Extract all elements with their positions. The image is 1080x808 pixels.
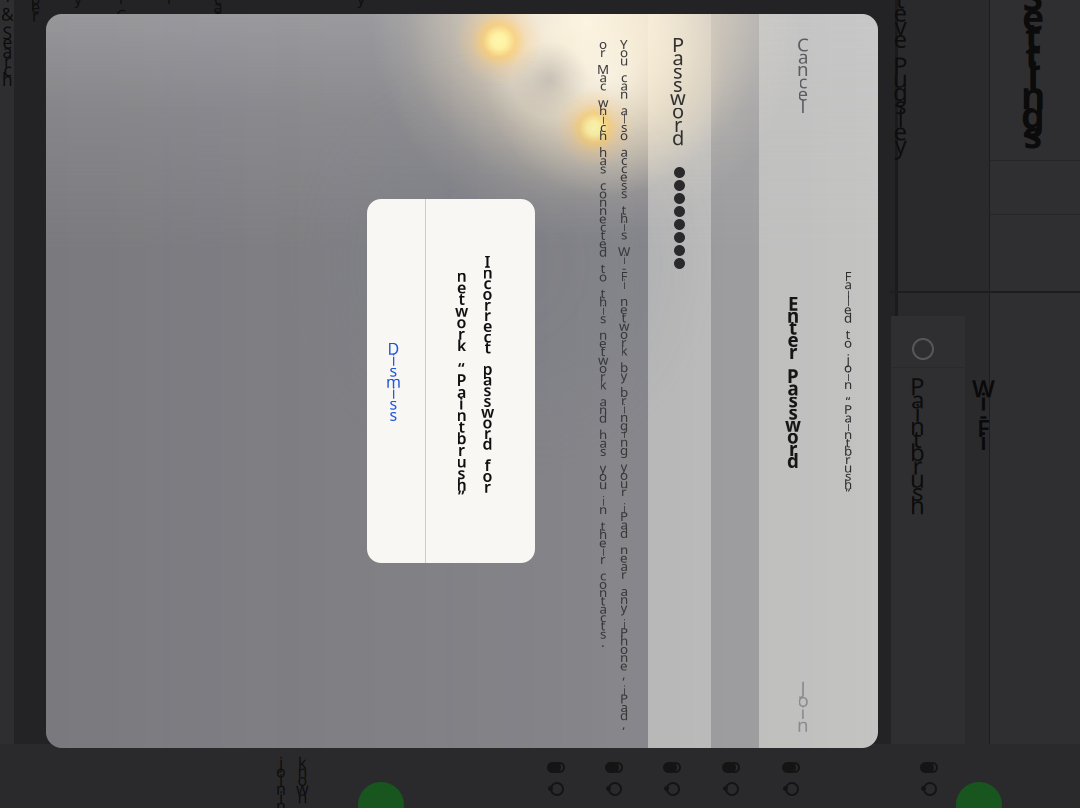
- staticText: i: [391, 349, 395, 370]
- staticText: ”: [458, 486, 465, 507]
- staticText: m: [386, 371, 401, 392]
- staticText: [601, 384, 604, 402]
- staticText: ,: [622, 714, 626, 732]
- staticText: b: [844, 442, 852, 459]
- staticText: o: [599, 359, 607, 377]
- staticText: e: [599, 533, 607, 551]
- staticText: [622, 60, 625, 78]
- staticText: s: [673, 71, 683, 97]
- staticText: b: [620, 383, 628, 401]
- staticText: r: [458, 323, 465, 344]
- staticText: o: [787, 424, 799, 449]
- staticText: P: [672, 31, 684, 58]
- staticText: n: [844, 425, 852, 443]
- staticText: n: [599, 193, 607, 210]
- staticText: s: [600, 442, 606, 460]
- staticText: E: [788, 291, 798, 316]
- staticText: t: [484, 337, 490, 358]
- staticText: u: [893, 62, 908, 94]
- staticText: o: [599, 268, 607, 285]
- staticText: e: [893, 0, 907, 28]
- staticText: i: [622, 424, 625, 442]
- staticText: i: [601, 110, 604, 127]
- staticText: e: [787, 327, 798, 352]
- staticText: h: [620, 209, 628, 227]
- staticText: w: [619, 317, 629, 334]
- staticText: i: [391, 382, 395, 403]
- staticText: P: [620, 507, 628, 525]
- staticText: n: [620, 590, 628, 608]
- staticText: P: [620, 690, 628, 707]
- staticText: a: [844, 408, 851, 426]
- staticText: t: [1025, 31, 1041, 80]
- button[interactable]: J: [777, 664, 829, 748]
- staticText: Y: [620, 35, 628, 53]
- staticText: [601, 450, 604, 468]
- staticText: o: [482, 465, 492, 486]
- staticText: s: [483, 390, 491, 411]
- staticText: e: [599, 209, 607, 227]
- staticText: t: [600, 342, 605, 360]
- staticText: k: [599, 375, 606, 393]
- staticText: c: [600, 608, 606, 626]
- staticText: e: [457, 277, 466, 298]
- staticText: c: [798, 69, 807, 94]
- staticText: e: [893, 115, 907, 147]
- staticText: [119, 0, 123, 17]
- staticText: P: [844, 400, 852, 418]
- staticText: [846, 384, 849, 401]
- staticText: o: [599, 35, 607, 53]
- staticText: i: [459, 393, 464, 414]
- staticText: a: [483, 369, 492, 390]
- staticText: n: [620, 85, 628, 102]
- staticText: n: [456, 404, 466, 425]
- staticText: o: [482, 412, 492, 433]
- staticText: [601, 135, 604, 152]
- staticText: w: [598, 93, 608, 111]
- staticText: o: [297, 769, 307, 790]
- staticText: r: [845, 450, 851, 468]
- button[interactable]: C: [777, 20, 829, 130]
- staticText: t: [600, 284, 605, 302]
- staticText: i: [601, 542, 604, 559]
- staticText: [622, 350, 625, 368]
- staticText: r: [600, 550, 606, 568]
- staticText: y: [620, 598, 627, 616]
- staticText: n: [456, 265, 466, 286]
- staticText: o: [599, 467, 607, 485]
- staticText: t: [621, 308, 626, 326]
- staticText: “: [458, 358, 465, 379]
- staticText: e: [1022, 0, 1044, 41]
- button[interactable]: D: [367, 199, 425, 563]
- staticText: e: [844, 300, 852, 318]
- staticText: P: [456, 369, 466, 391]
- staticText: h: [844, 475, 852, 493]
- staticText: [622, 93, 625, 111]
- staticText: y: [620, 458, 627, 475]
- staticText: p: [482, 358, 492, 379]
- staticText: n: [599, 583, 607, 601]
- staticText: [601, 168, 604, 186]
- staticText: o: [599, 575, 607, 593]
- staticText: r: [621, 482, 627, 500]
- staticText: r: [458, 439, 465, 460]
- staticText: n: [297, 761, 307, 782]
- staticText: t: [789, 315, 797, 340]
- staticText: r: [789, 339, 797, 364]
- staticText: [601, 317, 604, 335]
- staticText: [622, 449, 625, 467]
- staticText: r: [4, 49, 11, 72]
- staticText: a: [457, 381, 466, 402]
- staticText: n: [797, 56, 809, 81]
- staticText: c: [621, 68, 627, 86]
- staticText: o: [276, 761, 286, 782]
- staticText: [622, 673, 625, 691]
- staticText: [601, 85, 604, 102]
- staticText: e: [620, 300, 628, 318]
- staticText: a: [620, 143, 627, 160]
- staticText: [622, 192, 625, 210]
- staticText: -: [622, 259, 626, 276]
- staticText: t: [600, 616, 605, 634]
- staticText: b: [620, 358, 628, 376]
